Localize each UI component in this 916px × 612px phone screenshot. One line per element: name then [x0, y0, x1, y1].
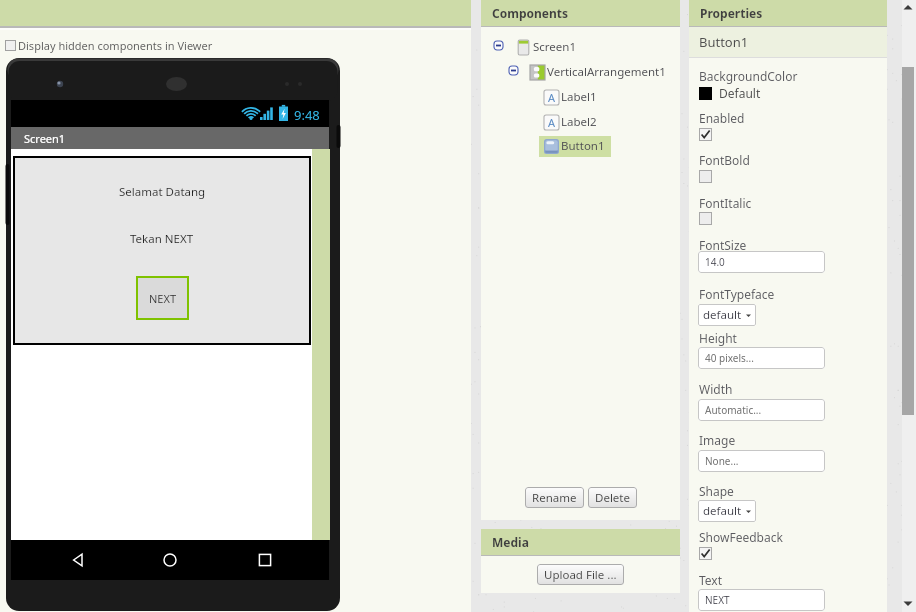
staticText: Width [699, 381, 733, 397]
staticText: Media [492, 534, 529, 550]
staticText: FontItalic [699, 195, 752, 211]
button[interactable]: None... [698, 450, 825, 472]
staticText: Delete [595, 490, 630, 506]
button[interactable]: Upload File ... [544, 564, 617, 585]
button[interactable]: Scroll up [902, 2, 914, 12]
button[interactable]: A [544, 114, 597, 130]
staticText: 40 pixels... [705, 351, 754, 365]
staticText: 9:48 [294, 106, 320, 124]
button[interactable]: default [698, 304, 756, 326]
staticText: A [548, 115, 556, 130]
staticText: Components [492, 5, 568, 21]
button[interactable]: Unchecked [699, 212, 712, 225]
staticText: Enabled [699, 110, 745, 126]
staticText: FontTypeface [699, 286, 775, 302]
staticText: Label2 [561, 114, 597, 130]
staticText: Shape [699, 483, 734, 499]
staticText: NEXT [705, 593, 730, 607]
staticText: Label1 [561, 89, 597, 105]
button[interactable]: Collapse node [494, 41, 503, 50]
staticText: Display hidden components in Viewer [18, 38, 213, 53]
staticText: Automatic... [705, 403, 762, 417]
staticText: None... [705, 454, 739, 468]
button[interactable]: Selamat Datang [15, 158, 309, 343]
button[interactable]: Unchecked [699, 170, 712, 183]
button[interactable]: default [698, 500, 756, 522]
button[interactable]: Delete [595, 487, 630, 508]
staticText: NEXT [149, 291, 177, 306]
button[interactable]: Checked [699, 547, 712, 560]
button[interactable]: Automatic... [698, 399, 825, 421]
staticText: ShowFeedback [699, 529, 783, 545]
staticText: FontBold [699, 152, 750, 168]
button[interactable]: Back [68, 550, 88, 570]
button[interactable]: Collapse node [509, 66, 518, 75]
button[interactable]: Home [160, 550, 180, 570]
staticText: A [548, 90, 556, 105]
button[interactable]: Rename [532, 487, 577, 508]
button[interactable]: Screen1 [516, 39, 577, 55]
button[interactable]: VerticalArrangement1 [530, 64, 666, 80]
staticText: default [703, 503, 742, 519]
button[interactable]: Scroll down [902, 599, 914, 609]
staticText: Selamat Datang [119, 184, 206, 200]
button[interactable]: NEXT [698, 589, 825, 611]
staticText: Image [699, 432, 736, 448]
staticText: VerticalArrangement1 [547, 64, 666, 80]
button[interactable]: Button1 [544, 138, 605, 154]
button[interactable]: Display hidden components in Viewer [5, 38, 213, 53]
staticText: Height [699, 330, 737, 346]
button[interactable]: A [544, 89, 597, 105]
staticText: Button1 [561, 138, 605, 154]
staticText: Default [719, 85, 761, 101]
staticText: Properties [700, 5, 763, 21]
staticText: Text [699, 572, 723, 588]
staticText: 14.0 [705, 255, 725, 269]
staticText: Button1 [699, 33, 749, 51]
staticText: FontSize [699, 237, 747, 253]
button[interactable]: Checked [699, 128, 712, 141]
button[interactable]: 40 pixels... [698, 347, 825, 369]
staticText: Tekan NEXT [130, 231, 194, 247]
staticText: Screen1 [533, 39, 577, 55]
staticText: default [703, 307, 742, 323]
staticText: BackgroundColor [699, 68, 798, 84]
button[interactable]: NEXT [138, 278, 187, 318]
button[interactable]: Recent apps [255, 550, 275, 570]
staticText: Upload File ... [544, 567, 617, 583]
button[interactable]: Default [699, 85, 761, 101]
staticText: Rename [532, 490, 577, 506]
staticText: Screen1 [24, 131, 66, 146]
button[interactable]: 14.0 [698, 251, 825, 273]
